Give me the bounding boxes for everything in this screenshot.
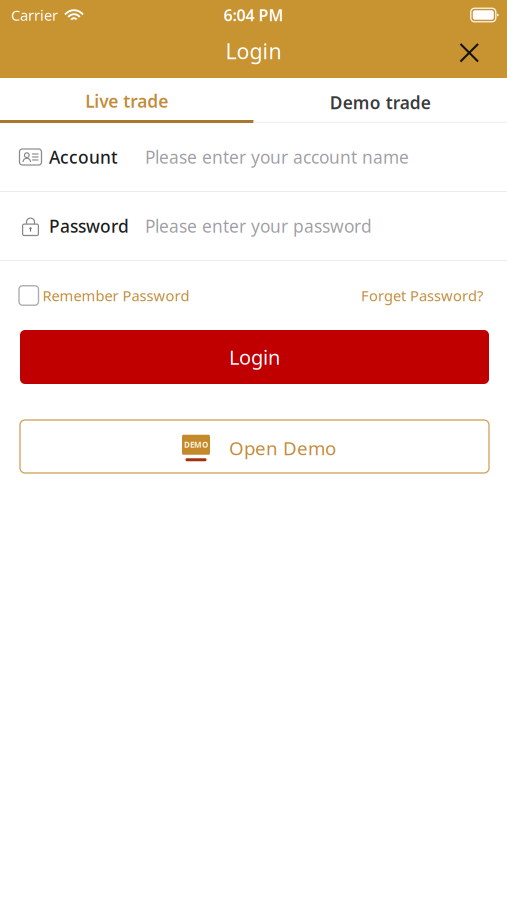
button[interactable]: Live trade [0, 78, 253, 123]
staticText: Demo trade [330, 91, 431, 114]
staticText: Account [49, 145, 118, 168]
button[interactable]: Demo trade [253, 78, 507, 123]
staticText: Live trade [85, 89, 168, 112]
button[interactable]: DEMO [20, 420, 489, 473]
staticText: Password [49, 214, 129, 237]
button[interactable]: Close [447, 30, 491, 74]
staticText: 6:04 PM [223, 4, 283, 26]
staticText: Login [225, 37, 281, 65]
staticText: DEMO [184, 439, 208, 450]
staticText: Please enter your password [145, 214, 372, 237]
staticText: Carrier [11, 5, 58, 25]
staticText: Forget Password? [361, 286, 483, 305]
staticText: Please enter your account name [145, 145, 409, 168]
staticText: Remember Password [42, 286, 189, 305]
staticText: Login [229, 344, 280, 370]
staticText: Open Demo [229, 436, 336, 460]
button[interactable]: Forget Password? [361, 278, 483, 313]
button[interactable]: Login [20, 330, 489, 384]
button[interactable]: Remember Password [19, 278, 189, 313]
